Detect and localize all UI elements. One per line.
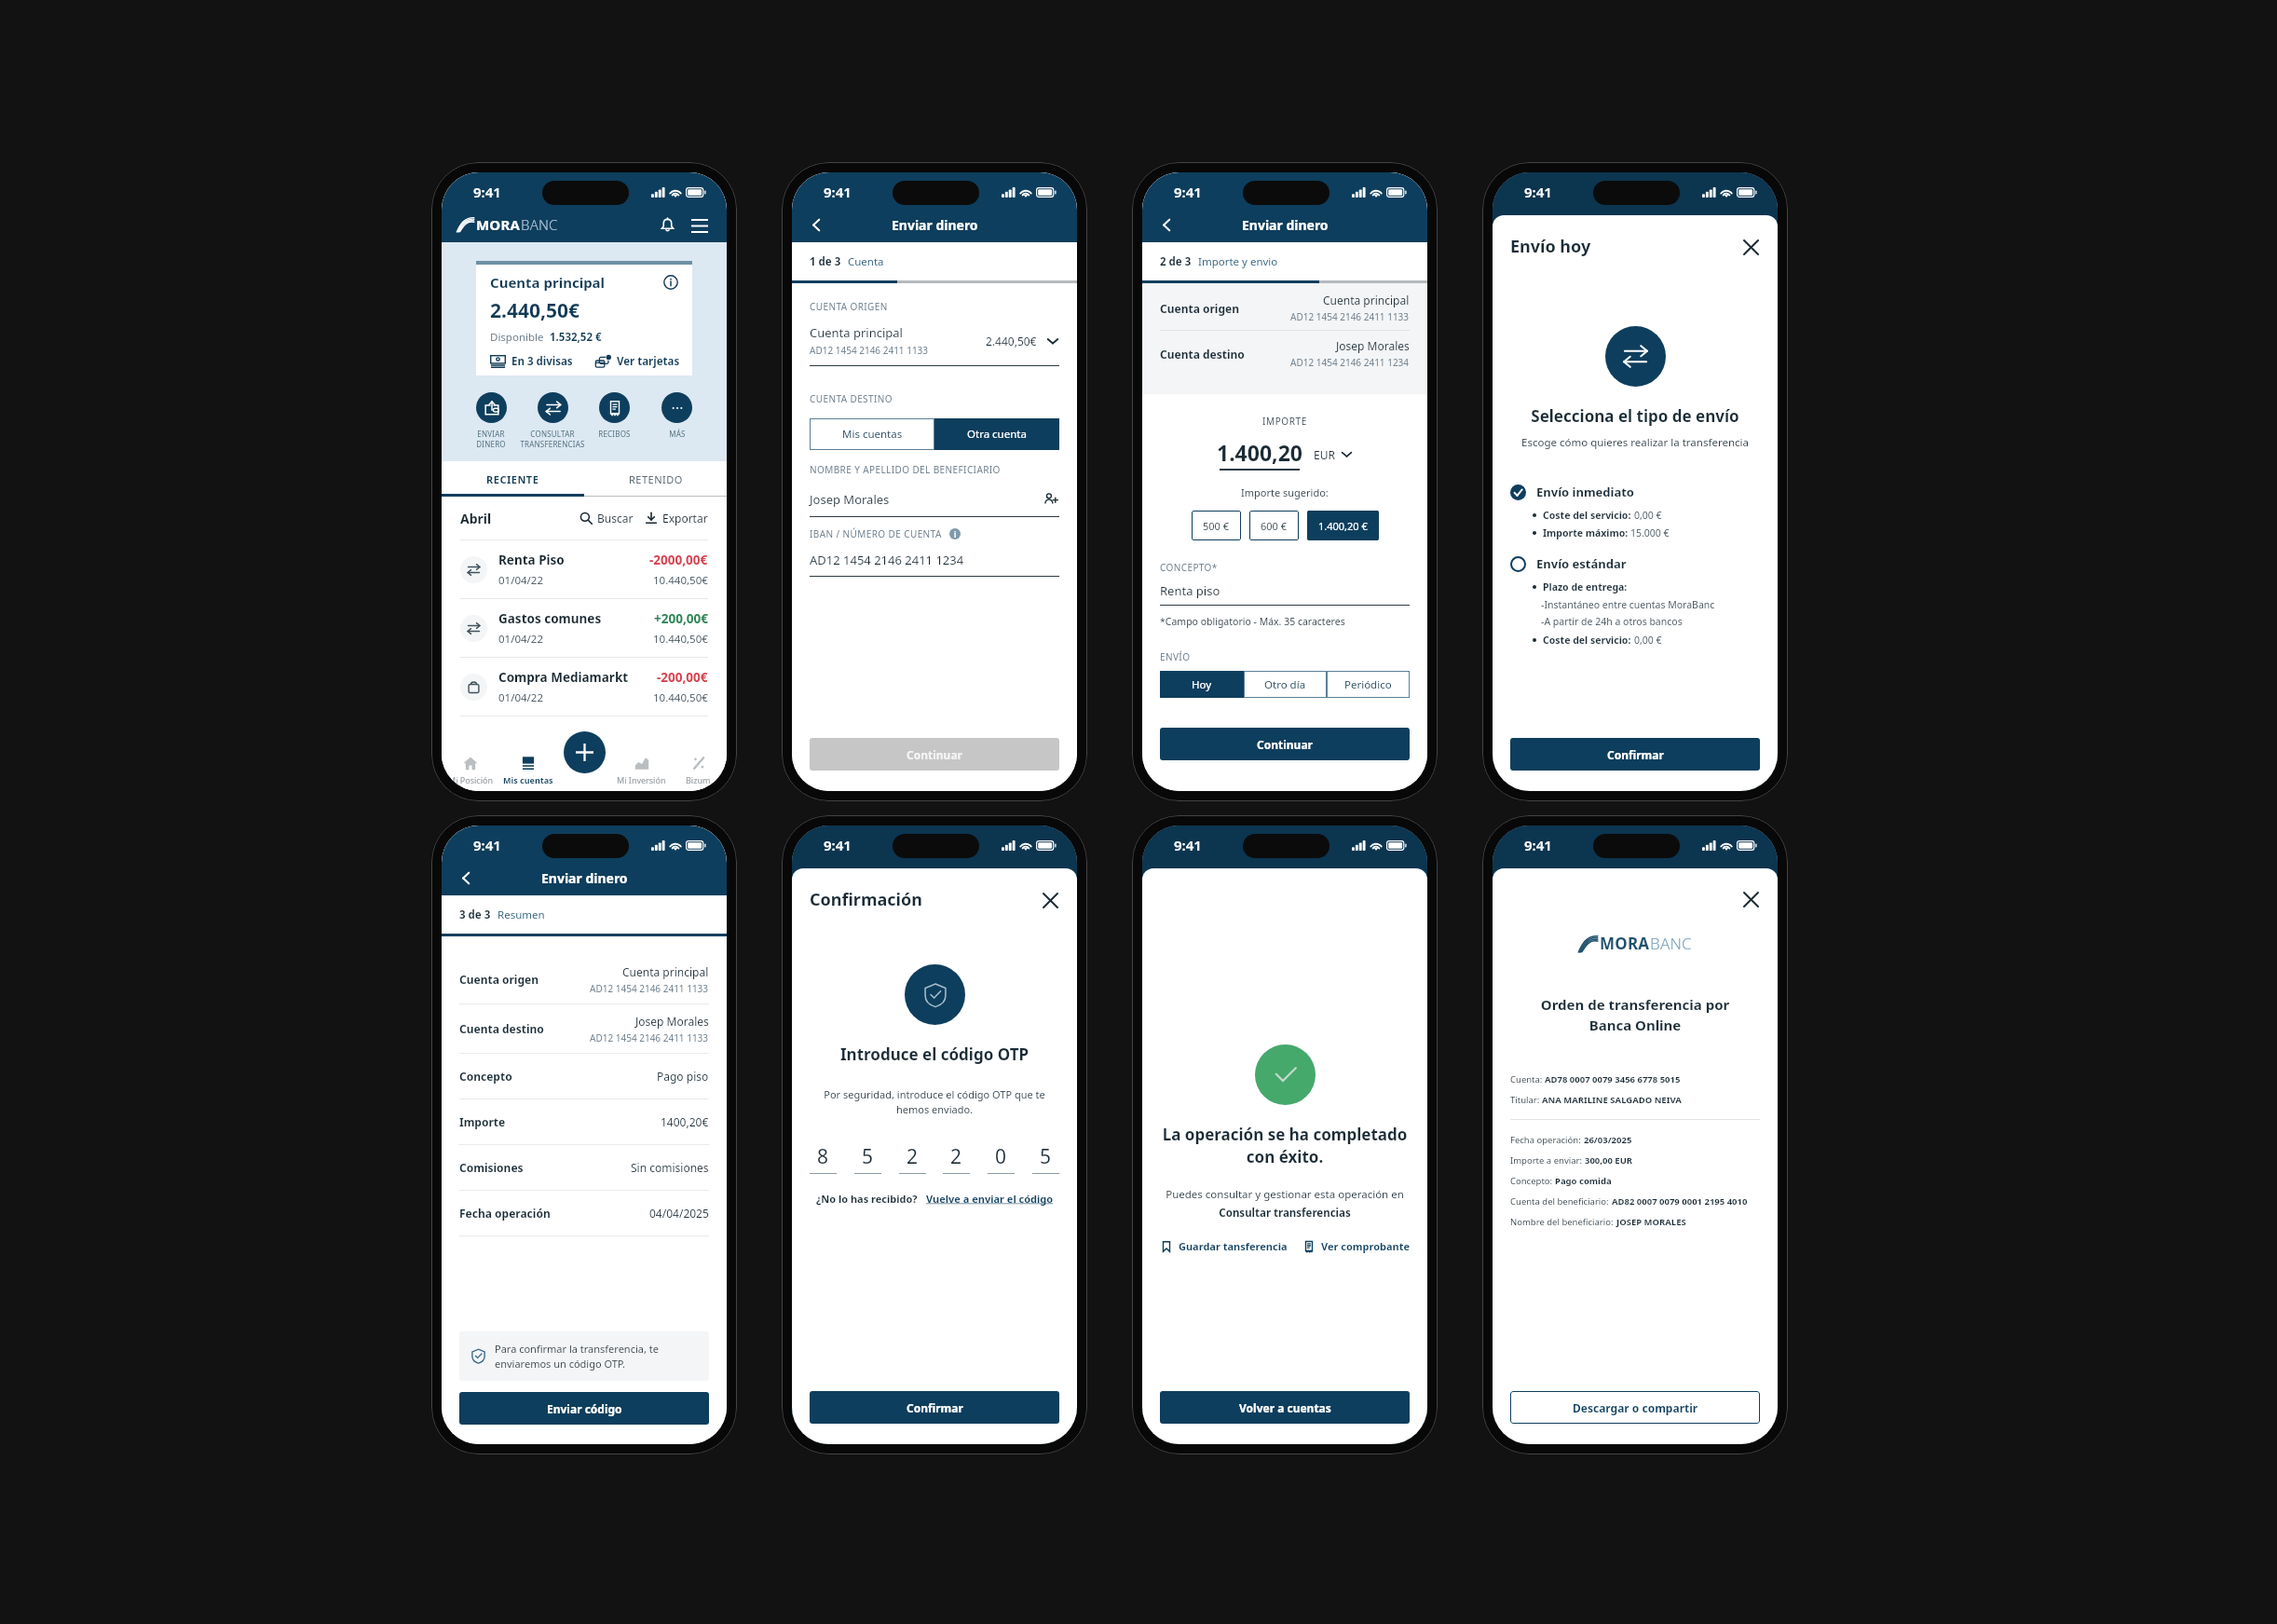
staticText: 1400,20€: [661, 1114, 709, 1129]
staticText: 26/03/2025: [1584, 1134, 1632, 1146]
staticText: Por seguridad, introduce el código OTP q…: [792, 1087, 1077, 1117]
staticText: Concepto: [459, 1069, 512, 1084]
button[interactable]: Envío estándar: [1510, 555, 1760, 572]
button[interactable]: Bizum: [670, 745, 727, 791]
button[interactable]: Back: [805, 213, 827, 236]
staticText: 2.440,50€: [986, 334, 1037, 348]
button[interactable]: Add contact: [1043, 491, 1059, 508]
button[interactable]: Confirmar: [1510, 738, 1760, 771]
staticText: 0,00 €: [1634, 509, 1662, 522]
button[interactable]: Guardar tansferencia: [1160, 1239, 1288, 1253]
button[interactable]: Confirmar: [810, 1391, 1059, 1424]
staticText: 500 €: [1203, 519, 1230, 533]
button[interactable]: RETENIDO: [584, 461, 727, 497]
button[interactable]: En 3 divisas: [490, 354, 573, 369]
button[interactable]: 1.400,20 €: [1307, 511, 1379, 540]
staticText: AD12 1454 2146 2411 1133: [590, 1031, 709, 1044]
button[interactable]: Buscar: [579, 511, 634, 525]
staticText: 9:41: [1174, 183, 1202, 201]
staticText: ¿No lo has recibido?: [816, 1192, 918, 1206]
staticText: 15.000 €: [1630, 526, 1670, 539]
staticText: IBAN / NÚMERO DE CUENTA: [810, 527, 942, 540]
button[interactable]: Cuenta principal: [810, 324, 1059, 357]
staticText: Importe: [459, 1114, 506, 1129]
staticText: ANA MARILINE SALGADO NEIVA: [1542, 1094, 1682, 1106]
button[interactable]: Otro día: [1244, 671, 1327, 698]
button[interactable]: ENVIAR DINERO: [460, 392, 522, 450]
staticText: Ver comprobante: [1321, 1239, 1411, 1253]
button[interactable]: Mis cuentas: [810, 418, 934, 450]
staticText: 1.400,20 €: [1318, 519, 1368, 533]
staticText: Envío inmediato: [1536, 484, 1634, 500]
staticText: MORA: [1600, 933, 1650, 954]
staticText: Otro día: [1264, 677, 1306, 692]
staticText: Enviar código: [547, 1401, 622, 1416]
staticText: 9:41: [824, 836, 852, 854]
staticText: 3 de 3: [459, 908, 491, 922]
button[interactable]: Compra Mediamarkt: [442, 658, 727, 716]
staticText: 2: [907, 1143, 919, 1170]
staticText: 600 €: [1261, 519, 1288, 533]
button[interactable]: Back: [455, 867, 477, 889]
button[interactable]: Continuar: [810, 738, 1059, 771]
button[interactable]: Otra cuenta: [934, 418, 1059, 450]
staticText: Abril: [460, 510, 492, 527]
button[interactable]: Mi Posición: [442, 745, 499, 791]
button[interactable]: MÁS: [646, 392, 708, 439]
button[interactable]: Ver comprobante: [1302, 1239, 1411, 1253]
button[interactable]: Close: [1738, 887, 1763, 911]
staticText: Cuenta del beneficiario:: [1510, 1195, 1612, 1208]
button[interactable]: Ver tarjetas: [595, 354, 680, 369]
button[interactable]: Menu: [689, 213, 711, 236]
staticText: CONSULTAR TRANSFERENCIAS: [520, 429, 585, 450]
button[interactable]: RECIENTE: [442, 461, 584, 497]
button[interactable]: Vuelve a enviar el código: [926, 1192, 1054, 1206]
button[interactable]: Exportar: [645, 511, 708, 525]
button[interactable]: Back: [1155, 213, 1178, 236]
staticText: En 3 divisas: [511, 354, 573, 369]
button[interactable]: Periódico: [1327, 671, 1410, 698]
staticText: 2.440,50€: [490, 297, 579, 324]
staticText: AD12 1454 2146 2411 1234: [1290, 356, 1410, 369]
button[interactable]: RECIBOS: [583, 392, 646, 439]
staticText: 10.440,50€: [653, 690, 708, 705]
staticText: Fecha operación: [459, 1206, 551, 1221]
button[interactable]: Renta Piso: [442, 540, 727, 598]
staticText: Coste del servicio:: [1543, 634, 1634, 647]
button[interactable]: Gastos comunes: [442, 599, 727, 657]
staticText: EUR: [1314, 447, 1335, 462]
staticText: Disponible: [490, 330, 544, 345]
button[interactable]: Mis cuentas: [499, 745, 556, 791]
button[interactable]: Volver a cuentas: [1160, 1391, 1410, 1424]
button[interactable]: Hoy: [1160, 671, 1244, 698]
staticText: 9:41: [824, 183, 852, 201]
staticText: Josep Morales: [810, 491, 890, 508]
staticText: Continuar: [907, 747, 962, 762]
button[interactable]: Info: [661, 273, 680, 292]
staticText: Ver tarjetas: [617, 354, 680, 369]
button[interactable]: Continuar: [1160, 728, 1410, 760]
button[interactable]: Close: [1738, 235, 1763, 259]
button[interactable]: Add: [564, 731, 606, 773]
staticText: Otra cuenta: [967, 427, 1027, 442]
staticText: Titular:: [1510, 1094, 1542, 1106]
button[interactable]: Mi Inversión: [613, 745, 670, 791]
staticText: 0,00 €: [1634, 634, 1662, 647]
button[interactable]: 500 €: [1192, 511, 1241, 540]
button[interactable]: Enviar código: [459, 1392, 709, 1425]
staticText: Renta piso: [1160, 582, 1220, 599]
button[interactable]: Notifications: [656, 213, 678, 236]
button[interactable]: CONSULTAR TRANSFERENCIAS: [522, 392, 583, 450]
staticText: 9:41: [1524, 836, 1552, 854]
staticText: 1.532,52 €: [550, 330, 602, 345]
button[interactable]: Descargar o compartir: [1510, 1391, 1760, 1424]
staticText: BANC: [1650, 933, 1692, 954]
staticText: Cuenta origen: [1160, 301, 1239, 316]
button[interactable]: Envío inmediato: [1510, 484, 1760, 500]
button[interactable]: 600 €: [1249, 511, 1299, 540]
staticText: *Campo obligatorio - Máx. 35 caracteres: [1160, 615, 1345, 628]
staticText: Envío estándar: [1536, 555, 1627, 572]
button[interactable]: Close: [1038, 888, 1062, 912]
staticText: Orden de transferencia por Banca Online: [1493, 995, 1778, 1035]
